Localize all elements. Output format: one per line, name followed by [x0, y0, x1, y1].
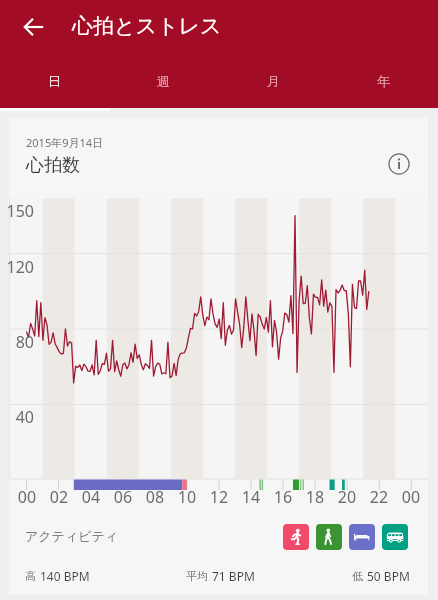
staticText: 月: [267, 73, 280, 89]
button[interactable]: Information: [382, 147, 416, 181]
staticText: 10: [171, 486, 203, 508]
staticText: 40: [0, 406, 34, 428]
staticText: 22: [363, 486, 395, 508]
staticText: 20: [331, 486, 363, 508]
staticText: 04: [75, 486, 107, 508]
staticText: 2015年9月14日: [26, 135, 104, 150]
button[interactable]: 週: [109, 62, 218, 108]
button[interactable]: 日: [0, 62, 109, 108]
button[interactable]: 月: [218, 62, 328, 108]
staticText: 心拍とストレス: [72, 13, 222, 39]
staticText: 平均: [186, 569, 208, 583]
staticText: 08: [139, 486, 171, 508]
button[interactable]: Sleep: [349, 524, 375, 550]
staticText: 80: [0, 331, 34, 353]
staticText: 心拍数: [26, 154, 80, 177]
staticText: 18: [299, 486, 331, 508]
staticText: 120: [0, 256, 34, 278]
staticText: 50 BPM: [367, 568, 410, 584]
button[interactable]: 年: [328, 62, 438, 108]
staticText: 日: [48, 73, 61, 89]
staticText: アクティビティ: [25, 528, 119, 544]
staticText: 年: [377, 73, 390, 89]
staticText: 週: [157, 73, 170, 89]
staticText: 150: [0, 200, 34, 222]
staticText: 12: [203, 486, 235, 508]
staticText: 71 BPM: [212, 568, 255, 584]
staticText: 16: [267, 486, 299, 508]
button[interactable]: Walking: [316, 524, 342, 550]
staticText: 140 BPM: [40, 568, 90, 584]
staticText: 高: [25, 569, 36, 583]
button[interactable]: Exercise: [283, 524, 309, 550]
staticText: 低: [352, 569, 363, 583]
staticText: 02: [43, 486, 75, 508]
button[interactable]: Vehicle: [382, 524, 408, 550]
staticText: 14: [235, 486, 267, 508]
button[interactable]: Back: [17, 10, 51, 44]
staticText: 00: [395, 486, 427, 508]
staticText: 00: [11, 486, 43, 508]
staticText: 06: [107, 486, 139, 508]
